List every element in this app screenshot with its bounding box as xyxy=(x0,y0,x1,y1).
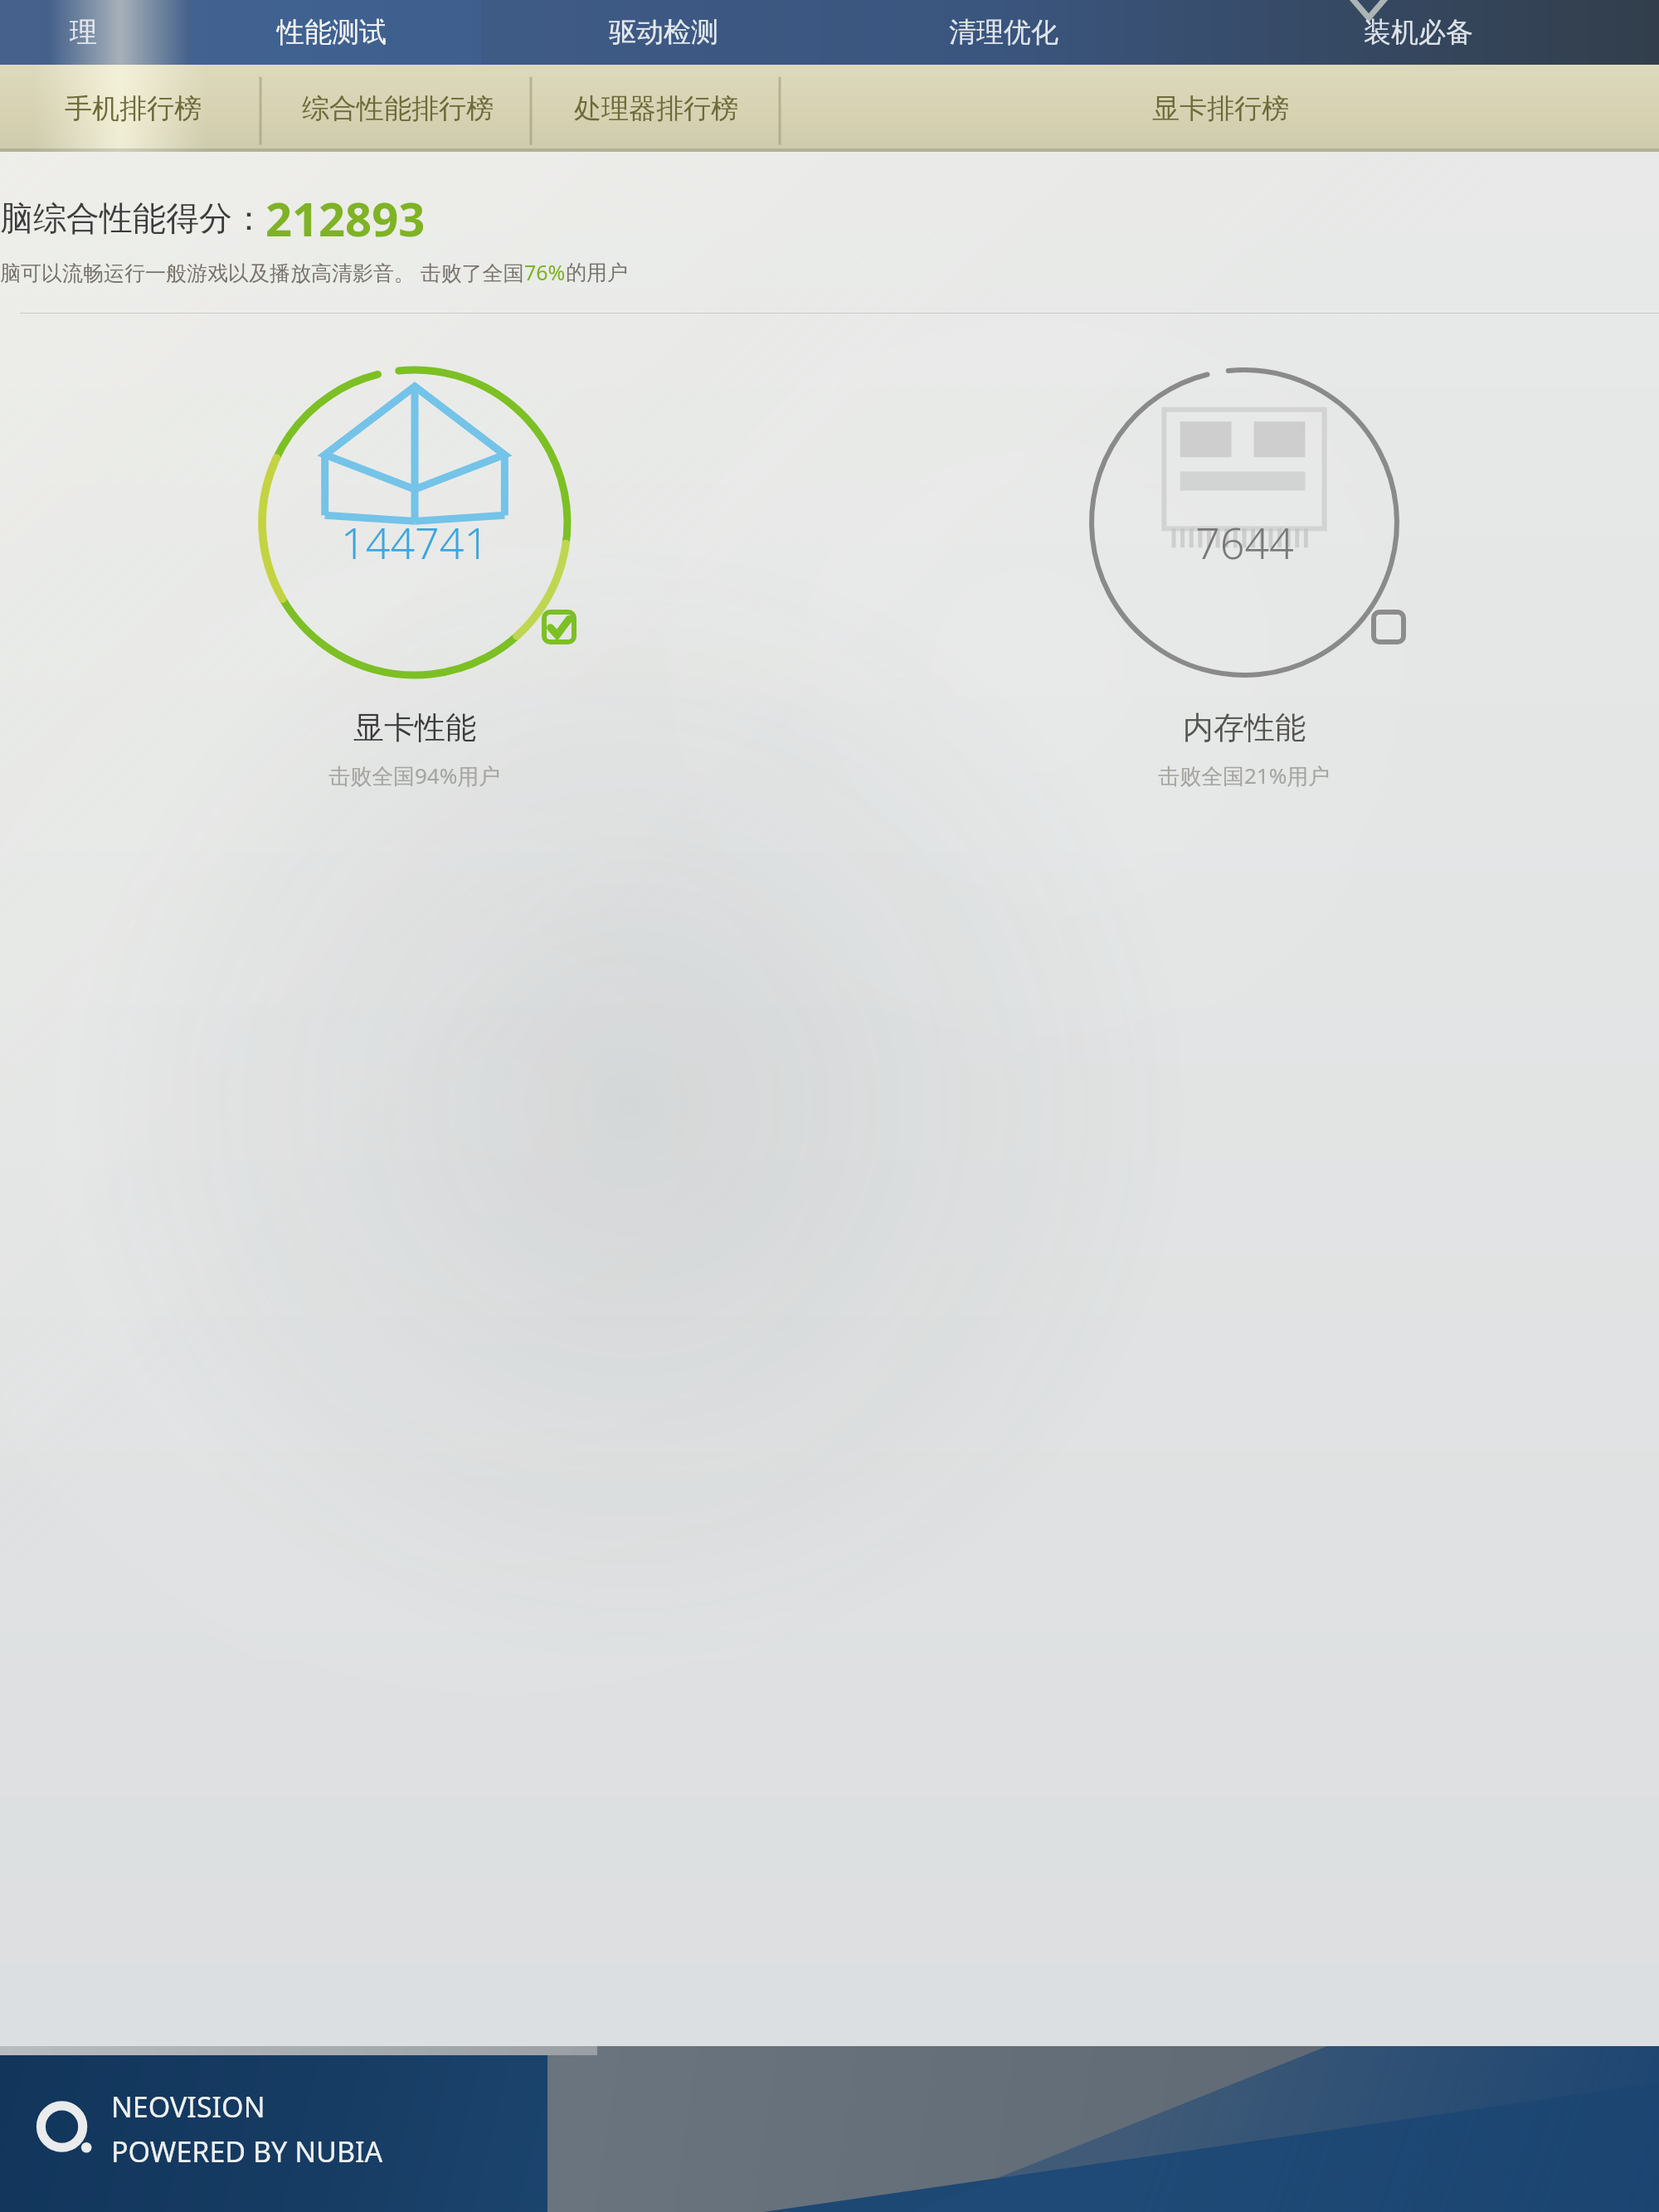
staticText: 手机排行榜 xyxy=(65,91,202,126)
button[interactable]: 已选中 xyxy=(542,610,576,644)
staticText: NEOVISION xyxy=(111,2088,265,2126)
button[interactable]: 显卡性能 144741 xyxy=(0,357,829,790)
staticText: 击败全国94%用户 xyxy=(328,761,501,790)
button[interactable]: 处理器排行榜 xyxy=(530,65,781,152)
staticText: 内存性能 xyxy=(1183,708,1306,747)
staticText: 装机必备 xyxy=(1364,15,1473,50)
staticText: 212893 xyxy=(265,187,426,250)
staticText: 理 xyxy=(70,15,97,50)
button[interactable]: 性能测试 xyxy=(166,0,498,65)
staticText: 144741 xyxy=(341,513,489,571)
staticText: 性能测试 xyxy=(277,15,387,50)
button[interactable]: 驱动检测 xyxy=(498,0,829,65)
button[interactable]: 清理优化 xyxy=(829,0,1178,65)
button[interactable]: 装机必备 xyxy=(1178,0,1659,65)
staticText: 显卡排行榜 xyxy=(1152,91,1289,126)
staticText: 脑可以流畅运行一般游戏以及播放高清影音。 击败了全国 xyxy=(0,258,524,286)
button[interactable]: NEOVISION powered by nubia xyxy=(35,2088,383,2171)
staticText: 击败全国21%用户 xyxy=(1158,761,1331,790)
staticText: 综合性能排行榜 xyxy=(302,91,494,126)
staticText: 清理优化 xyxy=(949,15,1058,50)
staticText: 显卡性能 xyxy=(353,708,476,747)
staticText: 的用户 xyxy=(566,260,628,285)
button[interactable]: 理 xyxy=(0,0,166,65)
button[interactable]: 手机排行榜 xyxy=(0,65,265,152)
staticText: 处理器排行榜 xyxy=(574,91,738,126)
button[interactable]: 内存性能 7644 xyxy=(829,357,1659,790)
staticText: POWERED BY NUBIA xyxy=(111,2132,383,2171)
button[interactable]: 显卡排行榜 xyxy=(781,65,1659,152)
staticText: 驱动检测 xyxy=(609,15,718,50)
button[interactable]: 综合性能排行榜 xyxy=(265,65,530,152)
staticText: 76% xyxy=(524,258,566,286)
staticText: 脑综合性能得分： xyxy=(0,197,265,239)
button[interactable]: 未选中 xyxy=(1372,610,1405,644)
staticText: 7644 xyxy=(1195,513,1294,571)
